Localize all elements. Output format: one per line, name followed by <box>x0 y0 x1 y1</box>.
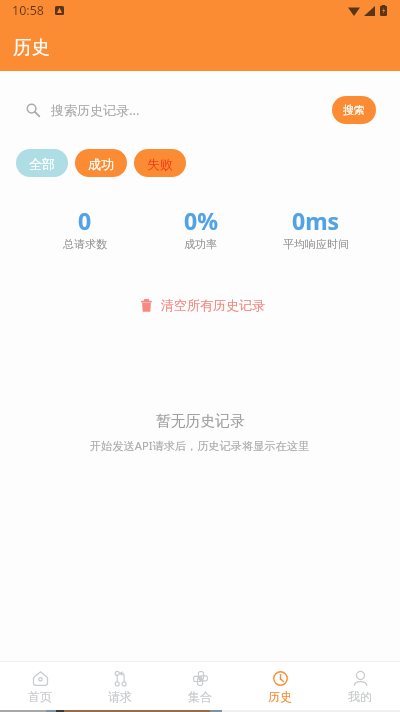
staticText: 平均响应时间 <box>283 237 349 251</box>
staticText: 成功率 <box>184 237 217 251</box>
staticText: 清空所有历史记录 <box>161 297 265 313</box>
button[interactable]: 搜索 <box>332 96 376 124</box>
staticText: 全部 <box>29 156 55 172</box>
staticText: 历史 <box>268 689 292 704</box>
staticText: 成功 <box>88 156 114 172</box>
other: 首页 <box>33 671 48 686</box>
button[interactable]: 失败 <box>134 149 186 177</box>
other: 我的 <box>353 671 368 686</box>
staticText: 10:58 <box>12 2 44 19</box>
button[interactable]: 历史 <box>240 664 320 710</box>
button[interactable]: 请求 <box>80 664 160 710</box>
staticText: 搜索 <box>343 103 365 117</box>
button[interactable]: 首页 <box>0 664 80 710</box>
staticText: 0ms <box>292 205 340 236</box>
staticText: 历史 <box>13 36 50 59</box>
staticText: 我的 <box>348 689 372 704</box>
staticText: 暂无历史记录 <box>156 412 245 431</box>
staticText: 开始发送API请求后，历史记录将显示在这里 <box>90 438 310 453</box>
staticText: 请求 <box>108 689 132 704</box>
button[interactable]: 全部 <box>16 149 68 177</box>
staticText: 失败 <box>147 156 173 172</box>
other: 历史 <box>273 671 288 686</box>
button[interactable]: 清空所有历史记录 <box>127 293 273 317</box>
staticText: 集合 <box>188 689 212 704</box>
other: 集合 <box>193 671 208 686</box>
staticText: 0% <box>184 205 218 236</box>
other: 请求 <box>113 671 128 686</box>
staticText: 0 <box>78 205 92 236</box>
staticText: 首页 <box>28 689 52 704</box>
button[interactable]: 成功 <box>75 149 127 177</box>
staticText: 总请求数 <box>63 237 107 251</box>
staticText: 搜索历史记录... <box>51 101 140 119</box>
button[interactable]: 我的 <box>320 664 400 710</box>
button[interactable]: 集合 <box>160 664 240 710</box>
